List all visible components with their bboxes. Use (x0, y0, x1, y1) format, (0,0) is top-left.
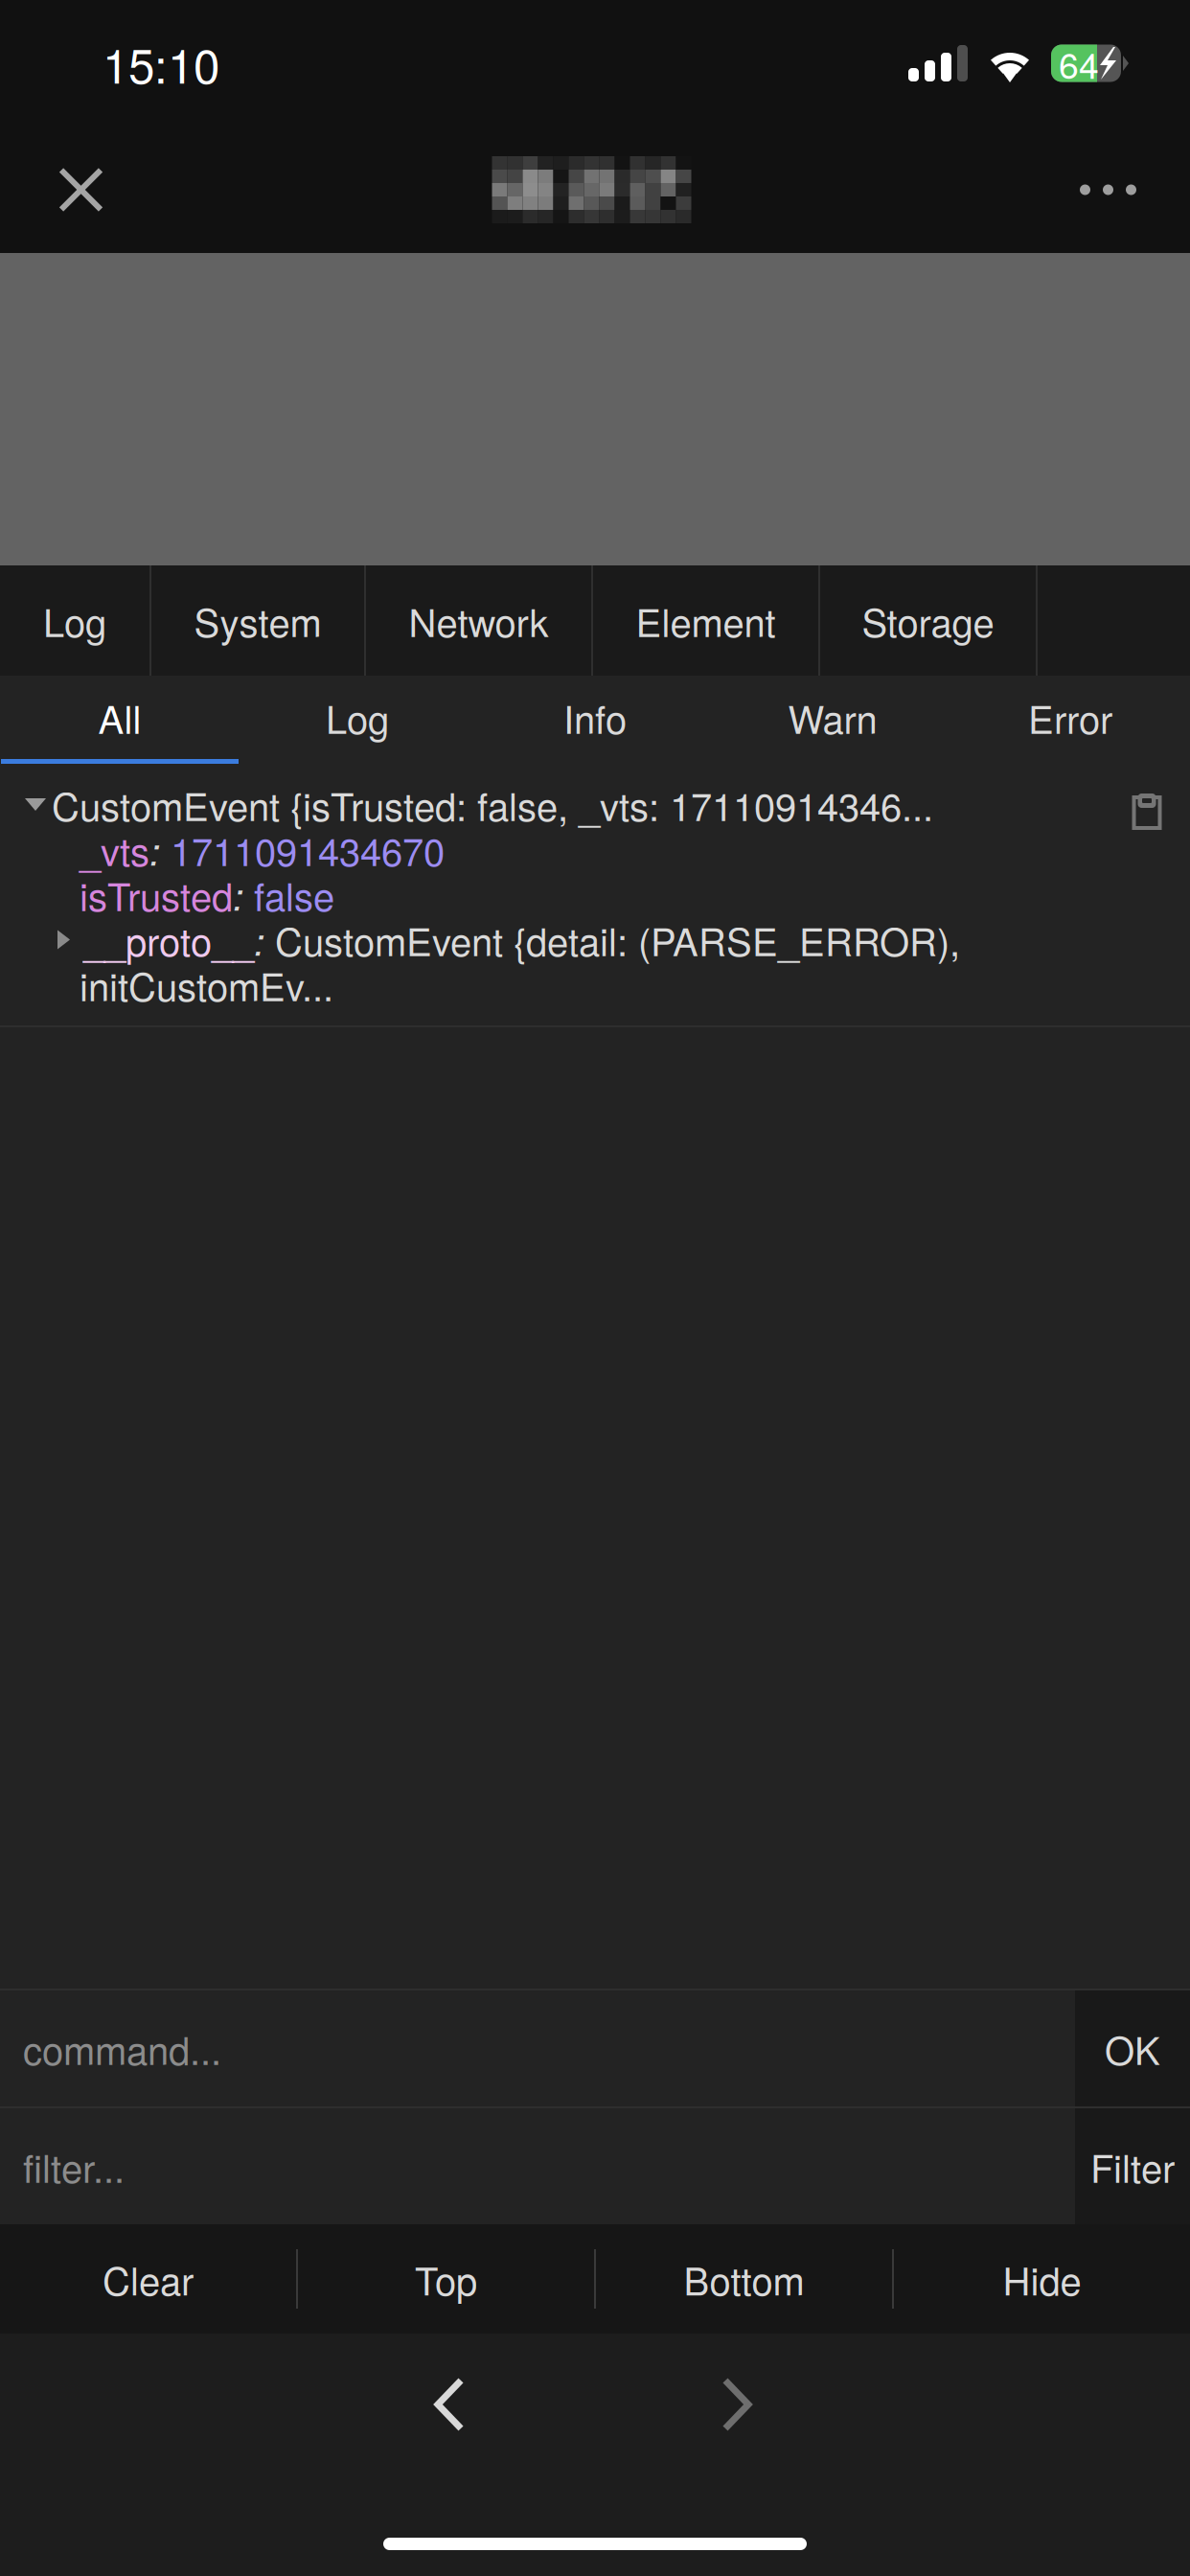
staticText: 1711091434670 (171, 822, 445, 877)
button[interactable]: Filter (1075, 2108, 1190, 2224)
staticText: System (194, 593, 321, 648)
button[interactable]: Forward (694, 2350, 780, 2459)
staticText: 64 (1059, 38, 1099, 89)
staticText: Clear (103, 2252, 194, 2306)
staticText: CustomEvent {detail: (PARSE_ERROR), (275, 912, 960, 967)
button[interactable]: Back (406, 2350, 492, 2459)
button[interactable]: More options (1055, 143, 1161, 237)
button[interactable]: System (151, 565, 364, 676)
staticText: initCustomEv... (80, 957, 333, 1012)
button[interactable]: Bottom (596, 2224, 892, 2334)
staticText: Hide (1003, 2252, 1081, 2306)
staticText (243, 867, 254, 922)
staticText: 15:10 (103, 29, 219, 97)
button[interactable]: Element (593, 565, 818, 676)
staticText (160, 822, 171, 877)
button[interactable]: Clear (0, 2224, 296, 2334)
staticText: : (233, 868, 243, 922)
staticText (264, 912, 275, 967)
staticText: false (254, 867, 334, 922)
staticText: Network (409, 593, 549, 648)
staticText: Log (326, 690, 389, 745)
button[interactable]: Log (239, 676, 476, 764)
staticText: filter... (23, 2139, 125, 2194)
staticText: CustomEvent {isTrusted: false, _vts: 171… (52, 777, 933, 832)
staticText: Filter (1090, 2139, 1175, 2194)
staticText: Storage (862, 593, 994, 648)
button[interactable]: OK (1075, 1990, 1190, 2106)
staticText: All (98, 690, 141, 745)
staticText: : (254, 913, 264, 967)
button[interactable]: Error (951, 676, 1189, 764)
button[interactable]: Storage (820, 565, 1036, 676)
staticText: __proto__ (83, 912, 254, 967)
button[interactable]: Info (476, 676, 714, 764)
staticText: Bottom (684, 2252, 804, 2306)
staticText: Element (636, 593, 776, 648)
staticText: : (149, 823, 160, 877)
staticText: OK (1105, 2021, 1160, 2076)
button[interactable]: Top (298, 2224, 594, 2334)
button[interactable]: Log (0, 565, 149, 676)
staticText: Error (1028, 690, 1112, 745)
button[interactable]: Warn (714, 676, 951, 764)
staticText: isTrusted (80, 867, 233, 922)
button[interactable]: Close (34, 142, 128, 237)
staticText: Log (43, 593, 106, 648)
staticText: Warn (788, 690, 877, 745)
staticText: Info (563, 690, 627, 745)
button[interactable]: Copy (1117, 785, 1177, 840)
button[interactable]: All (1, 676, 239, 764)
staticText: command... (23, 2021, 221, 2076)
staticText: Top (415, 2252, 477, 2306)
button[interactable]: Network (366, 565, 591, 676)
button[interactable]: Hide (894, 2224, 1190, 2334)
staticText: _vts (80, 822, 149, 877)
